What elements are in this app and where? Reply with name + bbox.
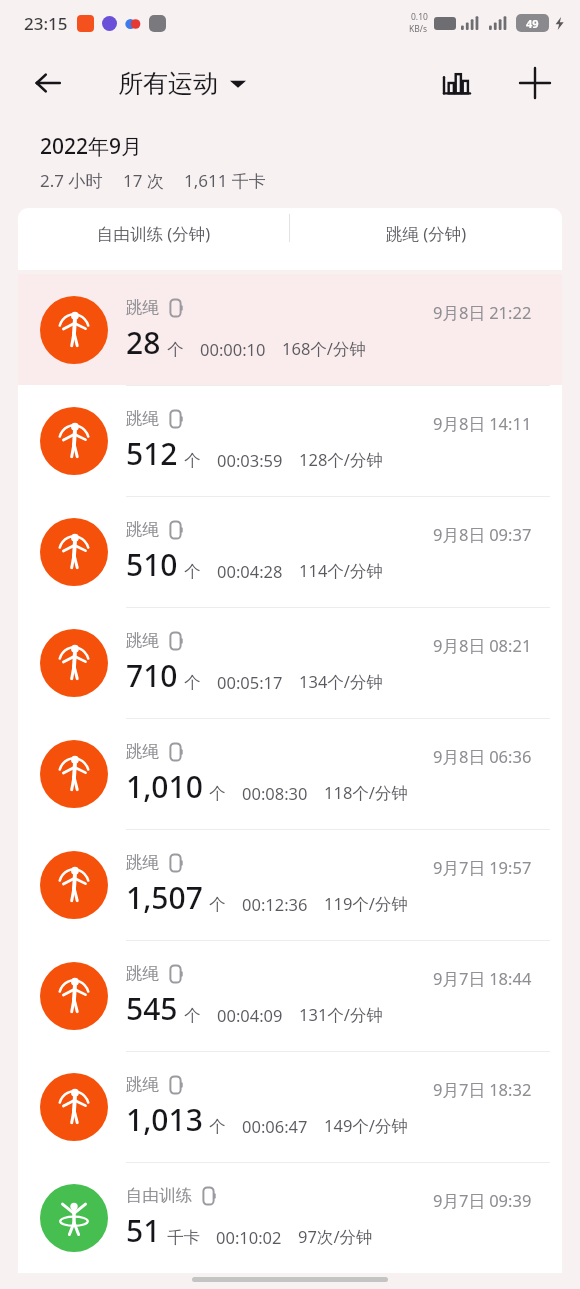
staticText: 00:12:36 (242, 893, 308, 915)
staticText: 千卡 (167, 1227, 200, 1248)
button[interactable]: 跳绳 (18, 1051, 562, 1162)
staticText: 00:03:59 (217, 449, 283, 471)
button[interactable]: 跳绳 (18, 940, 562, 1051)
staticText: 00:06:47 (242, 1115, 308, 1137)
staticText: 个 (209, 1116, 226, 1137)
staticText: 跳绳 (126, 519, 159, 540)
staticText: 个 (184, 450, 201, 471)
staticText: 9月7日 18:32 (433, 1078, 532, 1101)
button[interactable]: 统计图表 (432, 58, 482, 108)
staticText: 个 (209, 894, 226, 915)
staticText: 1,013 (126, 1099, 203, 1140)
staticText: 跳绳 (126, 1074, 159, 1095)
staticText: 所有运动 (118, 68, 218, 99)
staticText: 00:04:28 (217, 560, 283, 582)
staticText: 跳绳 (126, 630, 159, 651)
staticText: 28 (126, 322, 161, 363)
staticText: 跳绳 (126, 297, 159, 318)
staticText: 跳绳 (126, 852, 159, 873)
staticText: 512 (126, 433, 178, 474)
staticText: 128个/分钟 (299, 448, 383, 471)
staticText: 00:08:30 (242, 782, 308, 804)
button[interactable]: 跳绳 (分钟) (290, 208, 562, 270)
staticText: 23:15 (24, 12, 68, 35)
staticText: 545 (126, 988, 178, 1029)
staticText: 个 (184, 672, 201, 693)
staticText: 00:04:09 (217, 1004, 283, 1026)
staticText: 0.10 (411, 11, 428, 23)
staticText: 9月8日 08:21 (433, 634, 532, 657)
button[interactable]: 自由训练 (分钟) (18, 208, 289, 270)
staticText: 跳绳 (126, 408, 159, 429)
staticText: 9月8日 21:22 (433, 301, 532, 324)
staticText: 114个/分钟 (299, 559, 383, 582)
staticText: 00:00:10 (200, 338, 266, 360)
staticText: 跳绳 (126, 963, 159, 984)
staticText: 131个/分钟 (299, 1003, 383, 1026)
staticText: 个 (209, 783, 226, 804)
staticText: 1,010 (126, 766, 203, 807)
button[interactable]: 跳绳 (18, 496, 562, 607)
staticText: 9月8日 06:36 (433, 745, 532, 768)
staticText: KB/s (409, 23, 428, 35)
staticText: 49 (526, 16, 539, 31)
staticText: 168个/分钟 (282, 337, 366, 360)
staticText: 97次/分钟 (298, 1225, 373, 1248)
staticText: 149个/分钟 (324, 1114, 408, 1137)
staticText: 9月7日 09:39 (433, 1189, 532, 1212)
staticText: 118个/分钟 (324, 781, 408, 804)
staticText: 1,611 千卡 (184, 169, 266, 192)
button[interactable]: 跳绳 (18, 607, 562, 718)
staticText: 00:05:17 (217, 671, 283, 693)
staticText: 个 (184, 561, 201, 582)
button[interactable]: 返回 (24, 59, 72, 107)
staticText: 00:10:02 (216, 1226, 282, 1248)
staticText: 个 (184, 1005, 201, 1026)
button[interactable]: 自由训练 (18, 1162, 562, 1273)
button[interactable]: 跳绳 (18, 718, 562, 829)
staticText: 跳绳 (126, 741, 159, 762)
staticText: 134个/分钟 (299, 670, 383, 693)
staticText: 2.7 小时 (40, 169, 103, 192)
staticText: 9月7日 18:44 (433, 967, 532, 990)
staticText: 自由训练 (分钟) (97, 222, 211, 245)
staticText: 510 (126, 544, 178, 585)
staticText: 9月7日 19:57 (433, 856, 532, 879)
staticText: 9月8日 14:11 (433, 412, 532, 435)
staticText: 跳绳 (分钟) (386, 222, 467, 245)
staticText: 9月8日 09:37 (433, 523, 532, 546)
button[interactable]: 跳绳 (18, 274, 562, 385)
staticText: 个 (167, 339, 184, 360)
staticText: 自由训练 (126, 1185, 192, 1206)
button[interactable]: 所有运动 (118, 68, 246, 99)
button[interactable]: 添加运动 (510, 58, 560, 108)
staticText: 710 (126, 655, 178, 696)
button[interactable]: 跳绳 (18, 829, 562, 940)
staticText: 1,507 (126, 877, 203, 918)
staticText: 119个/分钟 (324, 892, 408, 915)
staticText: 2022年9月 (40, 132, 143, 161)
button[interactable]: 跳绳 (18, 385, 562, 496)
staticText: 51 (126, 1210, 161, 1251)
staticText: 17 次 (123, 169, 164, 192)
